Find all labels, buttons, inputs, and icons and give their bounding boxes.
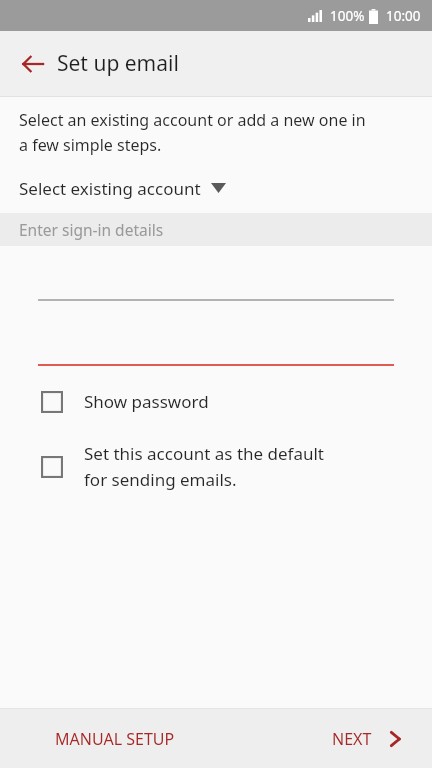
staticText: Show password: [84, 390, 209, 413]
staticText: 100%: [330, 7, 365, 25]
staticText: Enter sign-in details: [19, 219, 164, 240]
button[interactable]: Show password: [0, 388, 432, 415]
button[interactable]: Select existing account: [0, 169, 432, 207]
staticText: Select existing account: [19, 177, 201, 200]
staticText: 10:00: [386, 7, 421, 25]
staticText: Select an existing account or add a new …: [19, 109, 366, 155]
button[interactable]: Navigate up: [12, 43, 54, 85]
button[interactable]: MANUAL SETUP: [0, 709, 216, 768]
staticText: Set this account as the default for send…: [84, 442, 324, 491]
button[interactable]: Set this account as the default for send…: [0, 440, 432, 493]
staticText: Set up email: [57, 49, 179, 78]
staticText: MANUAL SETUP: [55, 728, 175, 750]
staticText: NEXT: [332, 728, 372, 750]
button[interactable]: NEXT: [308, 709, 432, 768]
